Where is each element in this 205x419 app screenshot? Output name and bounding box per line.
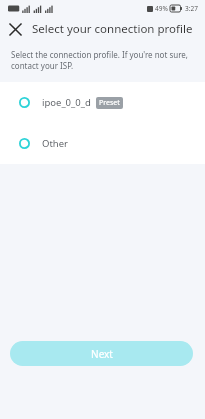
staticText: Other (42, 137, 69, 150)
button[interactable]: Close (4, 18, 26, 40)
staticText: 49% (155, 4, 168, 13)
staticText: 3:27 (185, 4, 198, 13)
staticText: ipoe_0_0_d (42, 96, 91, 109)
staticText: Next (91, 347, 113, 361)
button[interactable]: Other (0, 123, 205, 164)
button[interactable]: Next (10, 341, 193, 366)
staticText: Select your connection profile (32, 21, 193, 37)
staticText: Preset (99, 98, 120, 108)
button[interactable]: ipoe_0_0_d (0, 82, 205, 123)
staticText: Select the connection profile. If you're… (11, 49, 188, 71)
